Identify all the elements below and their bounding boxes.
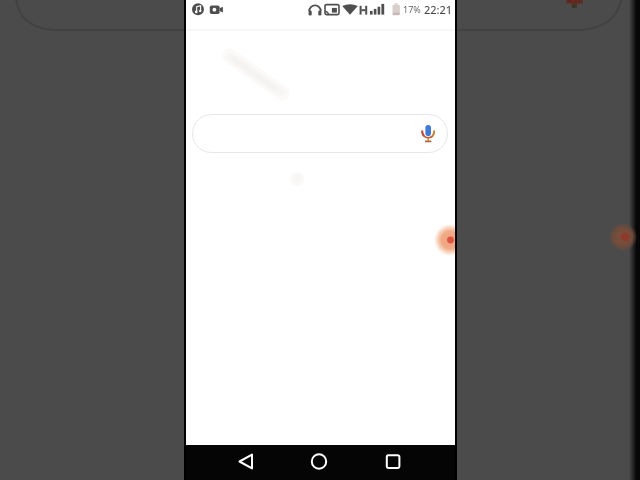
button[interactable] bbox=[434, 224, 455, 256]
button[interactable] bbox=[222, 445, 270, 480]
staticText: 17% bbox=[403, 3, 421, 15]
button[interactable] bbox=[295, 445, 343, 480]
button[interactable] bbox=[369, 445, 417, 480]
staticText: 22:21 bbox=[424, 2, 453, 17]
button[interactable] bbox=[192, 114, 448, 153]
